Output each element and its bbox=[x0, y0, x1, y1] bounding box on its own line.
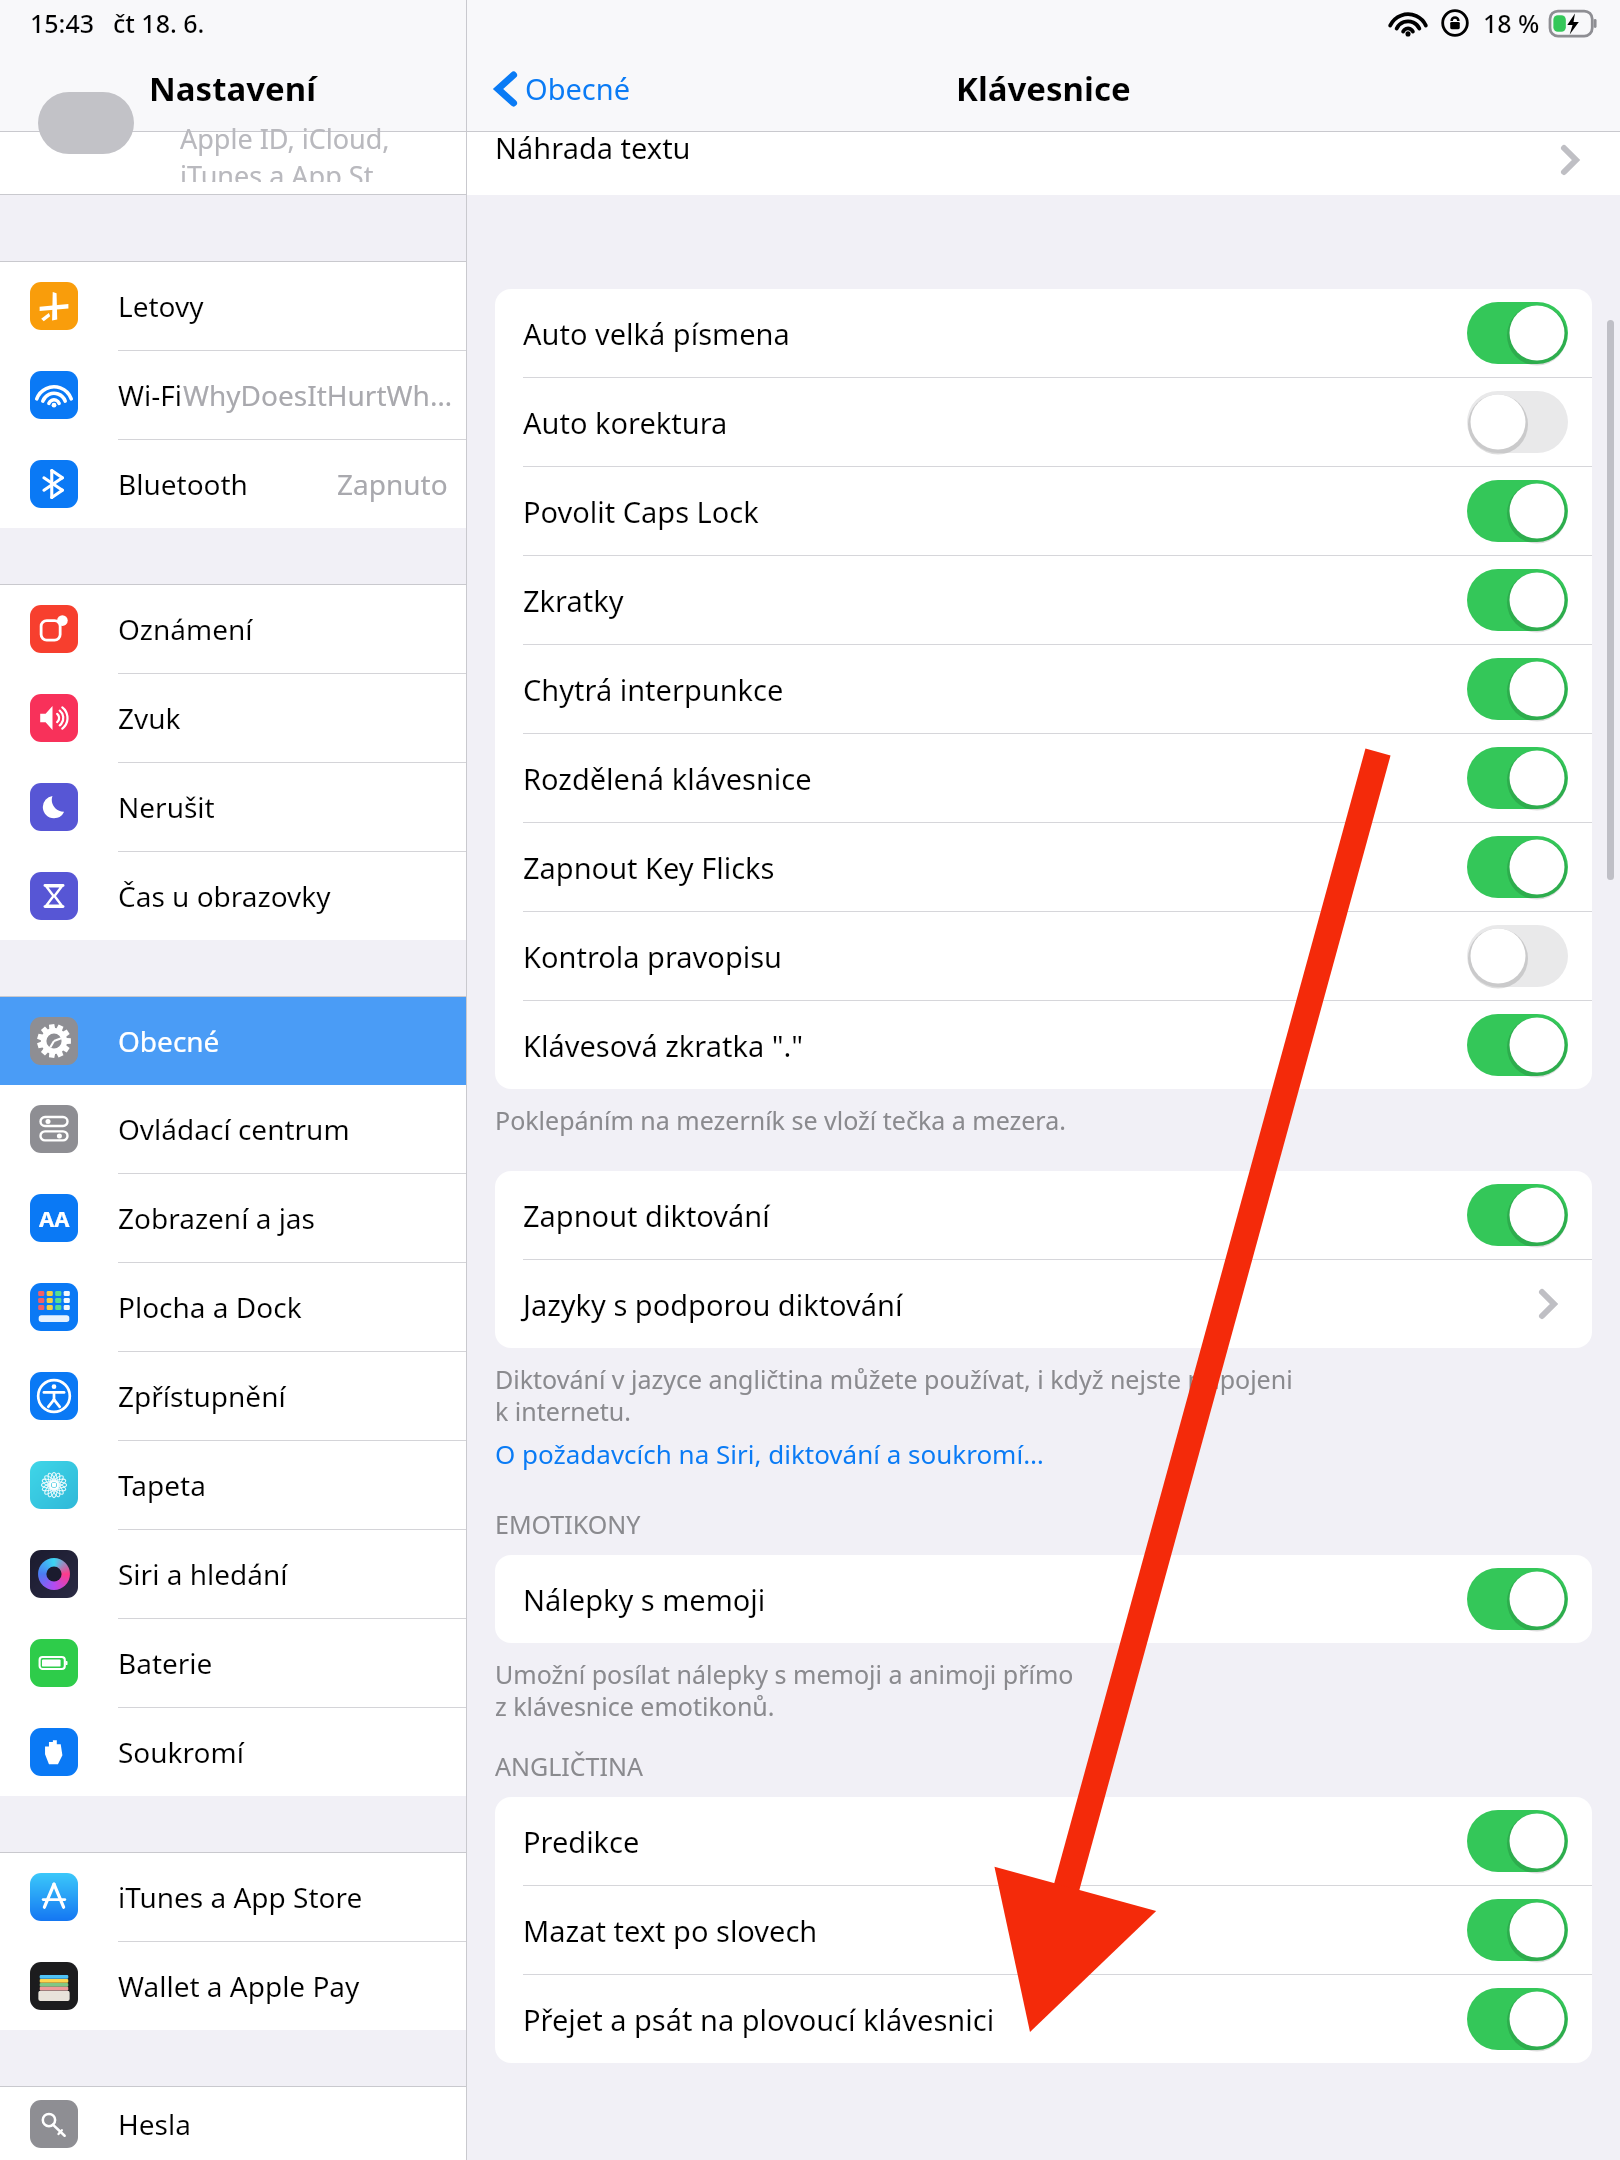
staticText: EMOTIKONY bbox=[495, 1507, 641, 1541]
button[interactable]: Hesla bbox=[0, 2087, 466, 2160]
button[interactable]: Baterie bbox=[0, 1619, 466, 1707]
staticText: O požadavcích na Siri, diktování a soukr… bbox=[495, 1436, 1044, 1471]
button[interactable]: Tapeta bbox=[0, 1441, 466, 1529]
staticText: AA bbox=[39, 1203, 70, 1233]
button[interactable]: Soukromí bbox=[0, 1708, 466, 1796]
button[interactable]: Zapnout diktování bbox=[495, 1171, 1592, 1259]
staticText: Soukromí bbox=[118, 1733, 244, 1771]
other: On bbox=[1467, 1014, 1568, 1076]
staticText: 18 % bbox=[1483, 6, 1540, 40]
staticText: Auto korektura bbox=[523, 403, 1467, 442]
button[interactable]: Zpřístupnění bbox=[0, 1352, 466, 1440]
staticText: Jazyky s podporou diktování bbox=[523, 1285, 1540, 1324]
button[interactable]: Auto velká písmena bbox=[495, 289, 1592, 377]
button[interactable]: AA bbox=[0, 1174, 466, 1262]
staticText: Rozdělená klávesnice bbox=[523, 759, 1467, 798]
staticText: Zkratky bbox=[523, 581, 1467, 620]
staticText: Siri a hledání bbox=[118, 1555, 288, 1593]
other: On bbox=[1467, 658, 1568, 720]
staticText: Klávesová zkratka "." bbox=[523, 1026, 1467, 1065]
staticText: Zapnuto bbox=[337, 465, 448, 503]
button[interactable]: Jazyky s podporou diktování bbox=[495, 1260, 1592, 1348]
staticText: čt 18. 6. bbox=[113, 6, 205, 40]
button[interactable]: Přejet a psát na plovoucí klávesnici bbox=[495, 1975, 1592, 2063]
staticText: Apple ID, iCloud, iTunes a App St... bbox=[180, 120, 466, 182]
button[interactable]: Kontrola pravopisu bbox=[495, 912, 1592, 1000]
staticText: Hesla bbox=[118, 2105, 191, 2143]
staticText: Umožní posílat nálepky s memoji a animoj… bbox=[495, 1657, 1074, 1723]
button[interactable]: Plocha a Dock bbox=[0, 1263, 466, 1351]
staticText: Wi‑Fi bbox=[118, 376, 183, 414]
staticText: Obecné bbox=[118, 1022, 220, 1060]
button[interactable]: Bluetooth bbox=[0, 440, 466, 528]
staticText: Baterie bbox=[118, 1644, 213, 1682]
staticText: Poklepáním na mezerník se vloží tečka a … bbox=[495, 1103, 1066, 1137]
button[interactable]: Wi‑Fi bbox=[0, 351, 466, 439]
other: On bbox=[1467, 1988, 1568, 2050]
other: On bbox=[1467, 747, 1568, 809]
staticText: Zapnout diktování bbox=[523, 1196, 1467, 1235]
button[interactable]: O požadavcích na Siri, diktování a soukr… bbox=[467, 1428, 1620, 1479]
button[interactable]: Ovládací centrum bbox=[0, 1085, 466, 1173]
other: Off bbox=[1467, 925, 1568, 987]
button[interactable]: Klávesová zkratka "." bbox=[495, 1001, 1592, 1089]
other: Off bbox=[1467, 391, 1568, 453]
button[interactable]: Predikce bbox=[495, 1797, 1592, 1885]
other: On bbox=[1467, 569, 1568, 631]
other: On bbox=[1467, 1810, 1568, 1872]
other: On bbox=[1467, 1568, 1568, 1630]
other: On bbox=[1467, 1899, 1568, 1961]
button[interactable]: Mazat text po slovech bbox=[495, 1886, 1592, 1974]
staticText: Tapeta bbox=[118, 1466, 206, 1504]
staticText: Zpřístupnění bbox=[118, 1377, 286, 1415]
button[interactable]: Čas u obrazovky bbox=[0, 852, 466, 940]
button[interactable]: Rozdělená klávesnice bbox=[495, 734, 1592, 822]
staticText: Povolit Caps Lock bbox=[523, 492, 1467, 531]
staticText: Bluetooth bbox=[118, 465, 248, 503]
button[interactable]: Auto korektura bbox=[495, 378, 1592, 466]
button[interactable]: Zvuk bbox=[0, 674, 466, 762]
other: On bbox=[1467, 480, 1568, 542]
staticText: Klávesnice bbox=[956, 66, 1131, 111]
staticText: Auto velká písmena bbox=[523, 314, 1467, 353]
button[interactable]: Oznámení bbox=[0, 585, 466, 673]
button[interactable]: Letovy bbox=[0, 262, 466, 350]
staticText: Predikce bbox=[523, 1822, 1467, 1861]
staticText: iTunes a App Store bbox=[118, 1878, 363, 1916]
staticText: WhyDoesItHurtWhenIP bbox=[183, 376, 466, 414]
staticText: Zvuk bbox=[118, 699, 181, 737]
button[interactable]: Nálepky s memoji bbox=[495, 1555, 1592, 1643]
staticText: Náhrada textu bbox=[495, 128, 691, 167]
staticText: Plocha a Dock bbox=[118, 1288, 302, 1326]
staticText: Nálepky s memoji bbox=[523, 1580, 1467, 1619]
button[interactable]: Zkratky bbox=[495, 556, 1592, 644]
other: On bbox=[1467, 836, 1568, 898]
button[interactable]: Obecné bbox=[491, 63, 637, 114]
staticText: Mazat text po slovech bbox=[523, 1911, 1467, 1950]
staticText: Wallet a Apple Pay bbox=[118, 1967, 360, 2005]
staticText: Nerušit bbox=[118, 788, 215, 826]
staticText: Oznámení bbox=[118, 610, 253, 648]
button[interactable]: Povolit Caps Lock bbox=[495, 467, 1592, 555]
button[interactable]: Chytrá interpunkce bbox=[495, 645, 1592, 733]
other: On bbox=[1467, 302, 1568, 364]
staticText: Čas u obrazovky bbox=[118, 877, 331, 915]
button[interactable]: Zapnout Key Flicks bbox=[495, 823, 1592, 911]
staticText: Přejet a psát na plovoucí klávesnici bbox=[523, 2000, 1467, 2039]
other: On bbox=[1467, 1184, 1568, 1246]
staticText: 15:43 bbox=[30, 6, 95, 40]
staticText: Diktování v jazyce angličtina můžete pou… bbox=[495, 1362, 1293, 1428]
staticText: ANGLIČTINA bbox=[495, 1749, 643, 1783]
staticText: Zobrazení a jas bbox=[118, 1199, 315, 1237]
staticText: Ovládací centrum bbox=[118, 1110, 350, 1148]
staticText: Nastavení bbox=[149, 66, 317, 111]
button[interactable]: Wallet a Apple Pay bbox=[0, 1942, 466, 2030]
button[interactable]: Siri a hledání bbox=[0, 1530, 466, 1618]
button[interactable]: Nerušit bbox=[0, 763, 466, 851]
button[interactable]: Obecné bbox=[0, 997, 466, 1085]
staticText: Kontrola pravopisu bbox=[523, 937, 1467, 976]
staticText: Obecné bbox=[525, 69, 631, 108]
staticText: Letovy bbox=[118, 287, 204, 325]
button[interactable]: iTunes a App Store bbox=[0, 1853, 466, 1941]
staticText: Chytrá interpunkce bbox=[523, 670, 1467, 709]
